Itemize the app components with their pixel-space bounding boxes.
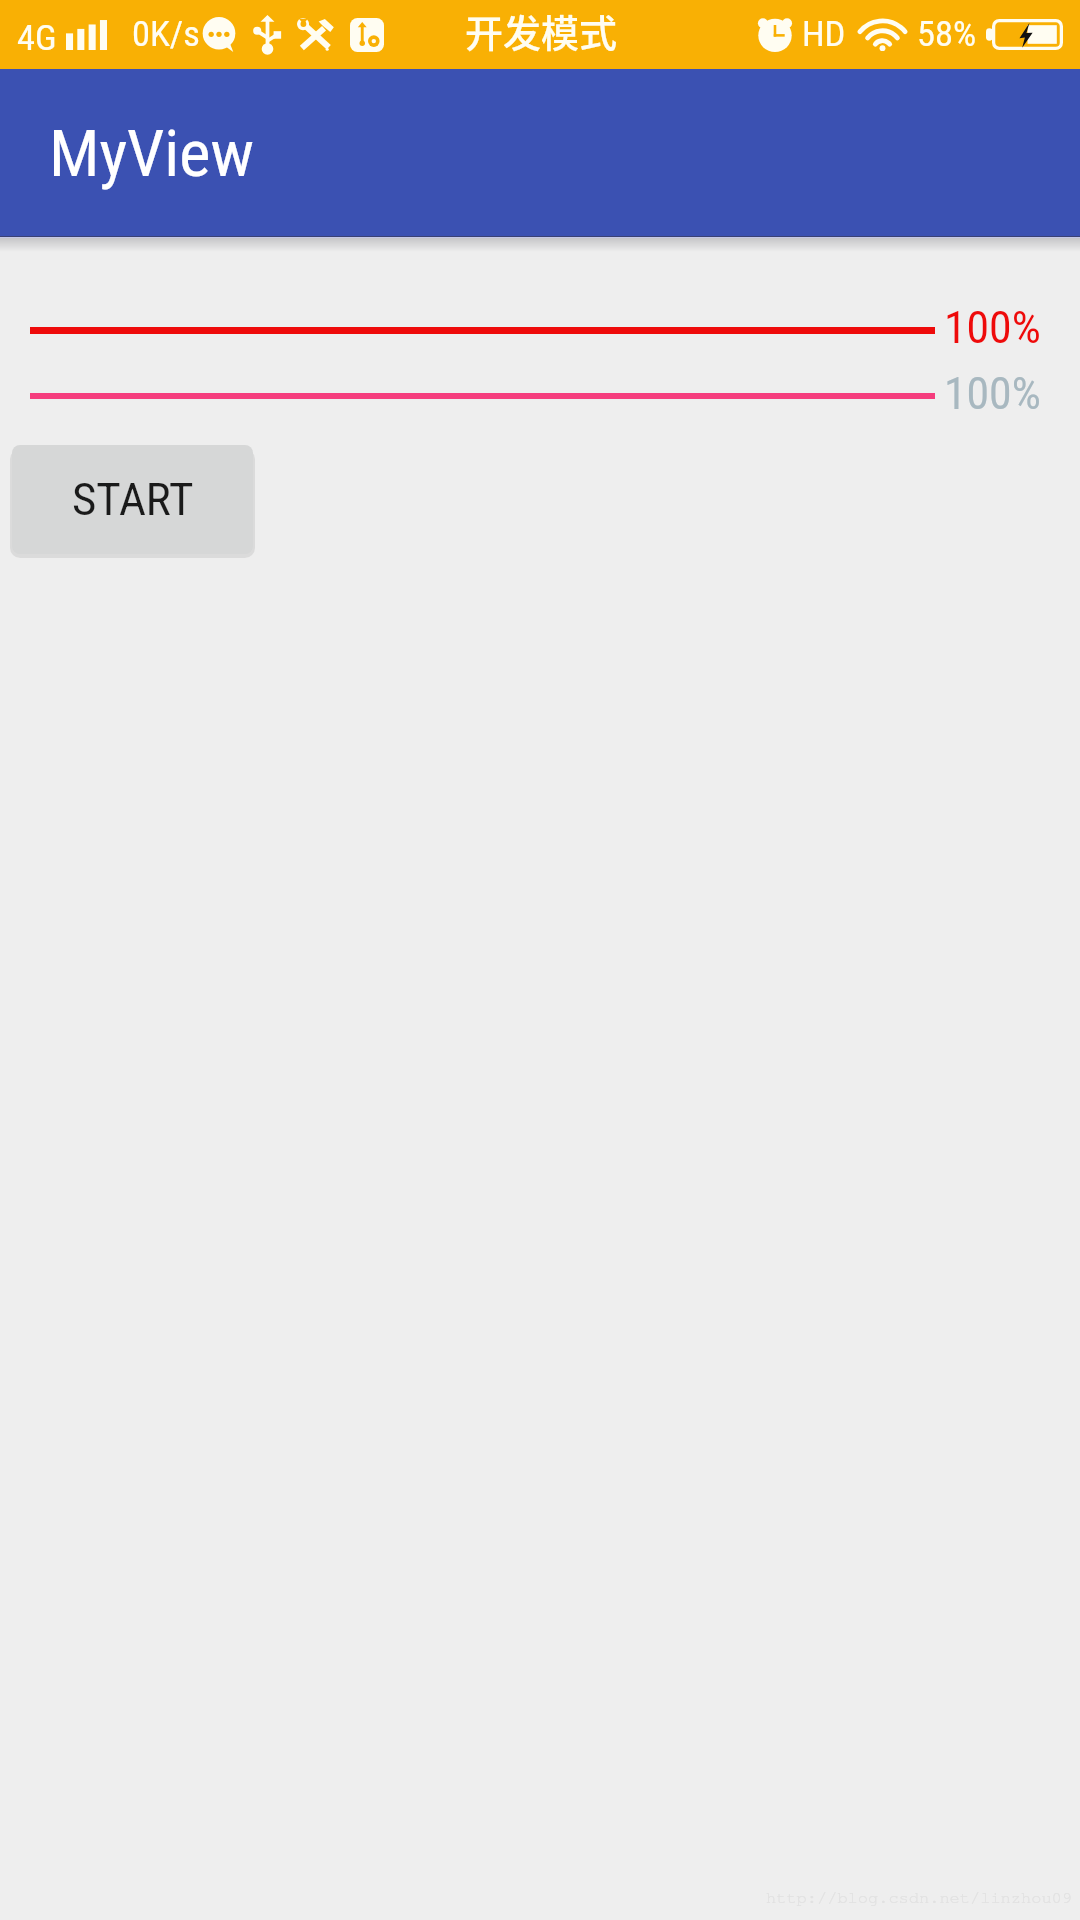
- other: Developer tools: [296, 18, 335, 52]
- staticText: 4G: [17, 18, 57, 59]
- button[interactable]: MyView: [0, 69, 1080, 236]
- other: Mobile signal strength: [66, 20, 107, 50]
- staticText: MyView: [49, 117, 254, 192]
- staticText: HD: [802, 14, 846, 55]
- other: Wi-Fi connected: [860, 19, 905, 50]
- staticText: 58%: [917, 14, 977, 55]
- staticText: http://blog.csdn.net/linzhou09: [766, 1889, 1072, 1906]
- staticText: 0K/s: [132, 14, 200, 55]
- staticText: 100%: [944, 368, 1041, 420]
- staticText: 100%: [944, 302, 1041, 354]
- other: Battery 58 percent, charging: [986, 19, 1063, 50]
- other: Alarm set: [756, 12, 794, 50]
- staticText: START: [72, 473, 194, 526]
- staticText: 开发模式: [465, 3, 618, 58]
- button[interactable]: START: [12, 445, 253, 554]
- other: USB debugging: [350, 18, 384, 52]
- other: Messages: [202, 18, 236, 52]
- other: USB connected: [253, 15, 282, 54]
